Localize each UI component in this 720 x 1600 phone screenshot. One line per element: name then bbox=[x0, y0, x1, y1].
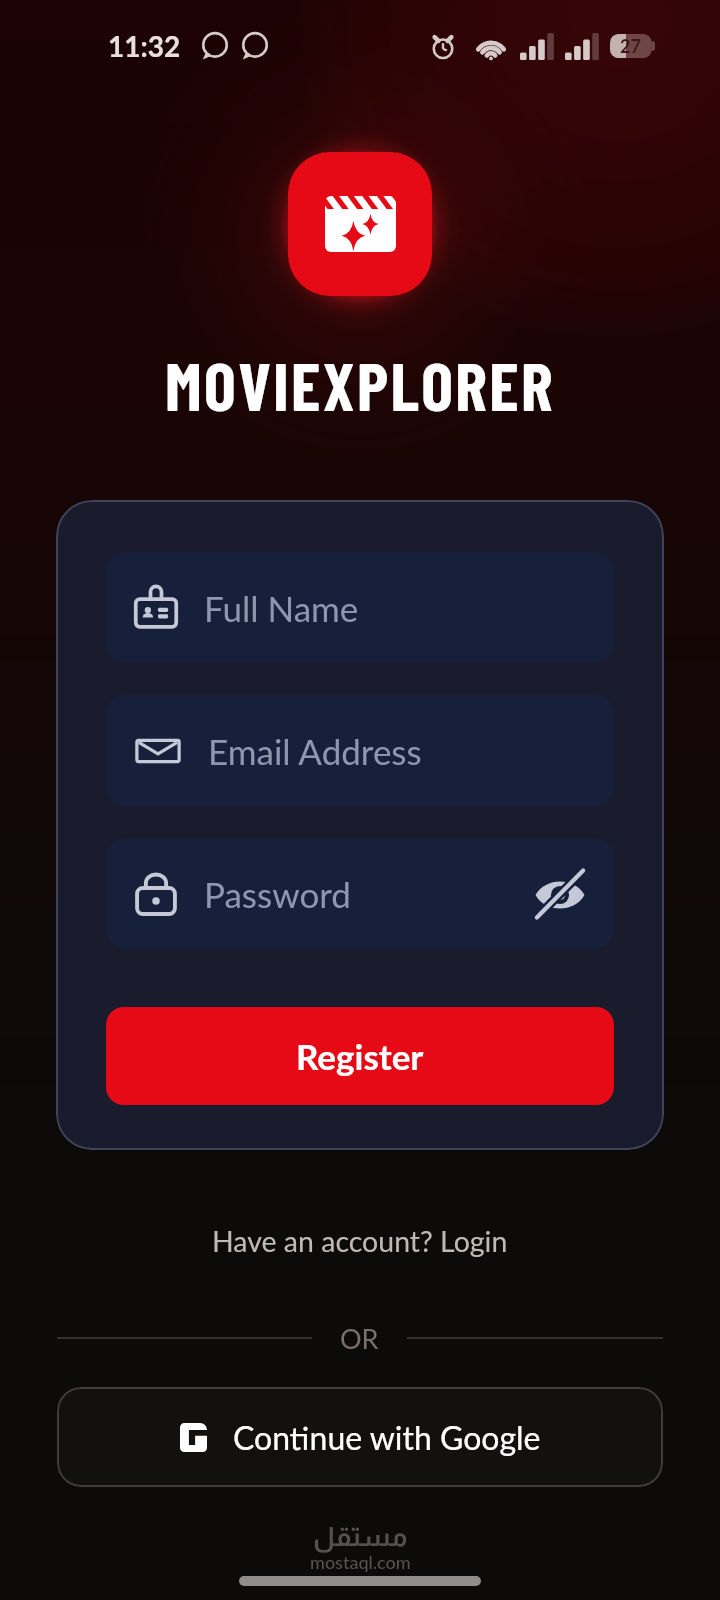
staticText: Register bbox=[296, 1035, 424, 1077]
button[interactable]: Register bbox=[106, 1007, 614, 1105]
button[interactable]: Email Address bbox=[106, 695, 614, 806]
staticText: Password bbox=[204, 873, 351, 915]
staticText: 27 bbox=[620, 35, 641, 57]
button[interactable]: Full Name bbox=[106, 552, 614, 663]
button[interactable]: Continue with Google bbox=[57, 1387, 663, 1487]
button[interactable]: Show password bbox=[528, 862, 592, 926]
staticText: mostaql.com bbox=[310, 1551, 411, 1573]
staticText: 11:32 bbox=[108, 29, 181, 63]
staticText: Email Address bbox=[208, 730, 422, 772]
staticText: مستقل bbox=[313, 1522, 408, 1552]
staticText: Full Name bbox=[204, 587, 359, 629]
button[interactable]: Have an account? Login bbox=[194, 1214, 526, 1268]
staticText: OR bbox=[340, 1322, 379, 1354]
staticText: Continue with Google bbox=[233, 1418, 541, 1456]
button[interactable]: Password bbox=[106, 838, 614, 949]
staticText: MOVIEXPLORER bbox=[165, 344, 555, 424]
